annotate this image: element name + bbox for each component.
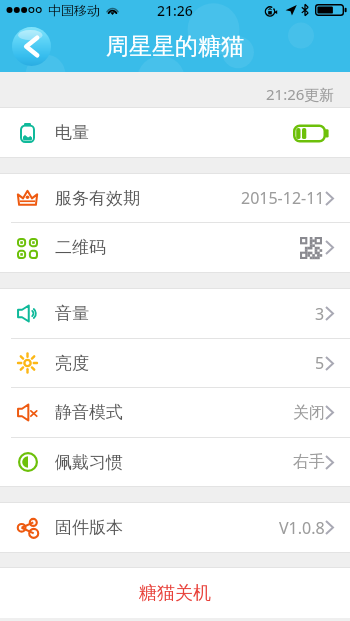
button[interactable]: 二维码	[0, 223, 350, 272]
staticText: 固件版本	[55, 517, 123, 538]
staticText: 糖猫关机	[139, 582, 211, 605]
staticText: 中国移动	[48, 2, 100, 18]
staticText: 佩戴习惯	[55, 452, 123, 473]
button[interactable]: 服务有效期	[0, 174, 350, 222]
staticText: 关闭	[293, 403, 325, 423]
button[interactable]: 糖猫关机	[0, 568, 350, 618]
staticText: 音量	[55, 303, 89, 324]
staticText: V1.0.8	[279, 517, 325, 539]
button[interactable]: 电量	[0, 108, 350, 157]
staticText: 二维码	[55, 237, 106, 258]
button[interactable]: 静音模式	[0, 388, 350, 437]
staticText: 3	[315, 303, 325, 325]
staticText: 电量	[55, 122, 89, 143]
staticText: 21:26更新	[266, 84, 335, 104]
staticText: 2015-12-11	[241, 187, 325, 209]
button[interactable]: Back	[12, 27, 51, 66]
staticText: 服务有效期	[55, 188, 140, 209]
button[interactable]: 固件版本	[0, 503, 350, 552]
staticText: 静音模式	[55, 402, 123, 423]
staticText: 亮度	[55, 353, 89, 374]
button[interactable]: 亮度	[0, 339, 350, 387]
staticText: 周星星的糖猫	[106, 32, 244, 61]
button[interactable]: 佩戴习惯	[0, 438, 350, 486]
staticText: 5	[315, 352, 325, 374]
staticText: 右手	[293, 452, 325, 472]
staticText: 21:26	[157, 1, 193, 20]
button[interactable]: 音量	[0, 289, 350, 338]
